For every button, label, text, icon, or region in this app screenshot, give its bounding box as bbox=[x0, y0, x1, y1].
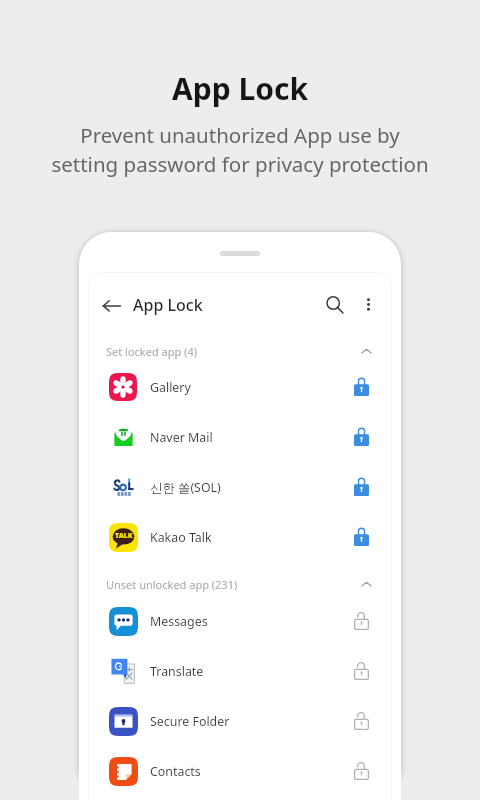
staticText: Naver Mail bbox=[150, 429, 213, 446]
button[interactable]: Unlocked bbox=[348, 608, 374, 634]
button[interactable]: Locked bbox=[348, 424, 374, 450]
button[interactable]: Translate bbox=[89, 646, 391, 696]
staticText: App Lock bbox=[172, 68, 309, 109]
button[interactable]: Messages bbox=[89, 596, 391, 646]
staticText: TALK bbox=[115, 531, 133, 541]
button[interactable]: Unset unlocked app (231) bbox=[89, 562, 391, 596]
staticText: Prevent unauthorized App use by setting … bbox=[51, 121, 429, 178]
staticText: Kakao Talk bbox=[150, 529, 212, 546]
button[interactable]: More options bbox=[354, 290, 383, 319]
button[interactable]: Locked bbox=[348, 474, 374, 500]
staticText: Translate bbox=[150, 663, 204, 680]
button[interactable]: Unlocked bbox=[348, 658, 374, 684]
button[interactable]: Naver Mail bbox=[89, 412, 391, 462]
button[interactable]: Unlocked bbox=[348, 708, 374, 734]
staticText: Gallery bbox=[150, 379, 191, 396]
staticText: App Lock bbox=[133, 294, 203, 316]
staticText: Contacts bbox=[150, 763, 201, 780]
staticText: Secure Folder bbox=[150, 713, 230, 730]
staticText: Unset unlocked app (231) bbox=[106, 577, 238, 592]
button[interactable]: Unlocked bbox=[348, 758, 374, 784]
button[interactable]: Set locked app (4) bbox=[89, 341, 391, 362]
button[interactable]: Gallery bbox=[89, 362, 391, 412]
button[interactable]: Locked bbox=[348, 374, 374, 400]
staticText: Set locked app (4) bbox=[106, 344, 198, 359]
staticText: Messages bbox=[150, 613, 208, 630]
button[interactable]: Search bbox=[318, 288, 352, 322]
button[interactable]: 신한 쏠(SOL) bbox=[89, 462, 391, 512]
button[interactable]: TALK bbox=[89, 512, 391, 562]
button[interactable]: Contacts bbox=[89, 746, 391, 796]
button[interactable]: Back bbox=[94, 288, 128, 322]
button[interactable]: Locked bbox=[348, 524, 374, 550]
staticText: 신한 쏠(SOL) bbox=[150, 479, 221, 496]
button[interactable]: Secure Folder bbox=[89, 696, 391, 746]
